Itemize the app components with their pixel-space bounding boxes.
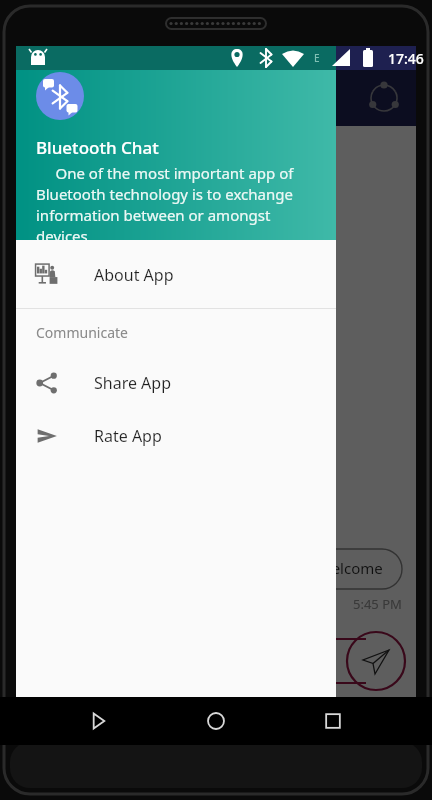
button[interactable]: Home (197, 702, 235, 740)
staticText: Communicate (36, 323, 128, 342)
staticText: 17:46 (388, 49, 424, 68)
button[interactable]: Recent apps (314, 702, 352, 740)
staticText: Bluetooth Chat (36, 136, 159, 159)
button[interactable]: Rate App (16, 409, 336, 462)
staticText: E (314, 51, 320, 65)
staticText: Welcome (318, 558, 383, 578)
staticText: Share App (94, 372, 172, 394)
staticText: Rate App (94, 425, 162, 447)
button[interactable]: Share App (16, 356, 336, 409)
button[interactable]: About App (16, 248, 336, 301)
button[interactable]: Share (364, 78, 404, 118)
button[interactable]: Back (80, 702, 118, 740)
staticText: One of the most important app of Bluetoo… (36, 163, 316, 240)
staticText: About App (94, 264, 174, 286)
button[interactable]: Bluetooth Chat (16, 46, 336, 240)
staticText: 5:45 PM (353, 595, 402, 613)
